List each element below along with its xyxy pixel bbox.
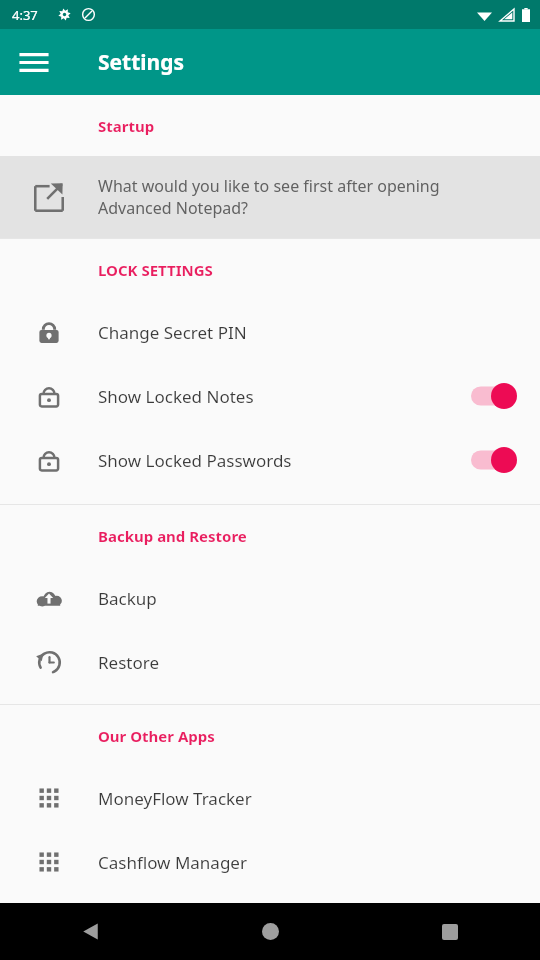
button[interactable]: Change Secret PIN — [0, 300, 540, 364]
button[interactable]: Home — [180, 903, 360, 960]
button[interactable]: Toggle Show Locked Passwords — [468, 440, 520, 480]
staticText: Backup and Restore — [98, 526, 247, 546]
button[interactable]: Recent apps — [360, 903, 540, 960]
button[interactable]: Cashflow Manager — [0, 830, 540, 894]
staticText: LOCK SETTINGS — [98, 260, 213, 280]
staticText: MoneyFlow Tracker — [98, 787, 520, 810]
staticText: 4:37 — [12, 6, 38, 24]
staticText: Settings — [98, 48, 185, 77]
staticText: Our Other Apps — [98, 726, 215, 746]
staticText: Restore — [98, 651, 520, 674]
button[interactable]: Open navigation menu — [10, 38, 58, 86]
staticText: Change Secret PIN — [98, 321, 520, 344]
staticText: Backup — [98, 587, 520, 610]
button[interactable]: Back — [0, 903, 180, 960]
button[interactable]: Toggle Show Locked Notes — [468, 376, 520, 416]
staticText: Startup — [98, 116, 155, 136]
button[interactable]: Backup — [0, 566, 540, 630]
button[interactable]: Restore — [0, 630, 540, 694]
staticText: Cashflow Manager — [98, 851, 520, 874]
button[interactable]: What would you like to see first after o… — [0, 156, 540, 238]
staticText: Show Locked Notes — [98, 385, 468, 408]
button[interactable]: MoneyFlow Tracker — [0, 766, 540, 830]
button[interactable]: Show Locked Passwords — [0, 428, 540, 492]
button[interactable]: Show Locked Notes — [0, 364, 540, 428]
staticText: What would you like to see first after o… — [98, 175, 500, 219]
staticText: Show Locked Passwords — [98, 449, 468, 472]
